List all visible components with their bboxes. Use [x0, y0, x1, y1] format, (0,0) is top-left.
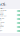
- staticText: Yesterday: [0, 15, 7, 17]
- button[interactable]: Internet: [0, 17, 20, 21]
- staticText: Electric: [0, 13, 4, 15]
- staticText: Mon: [0, 19, 2, 21]
- staticText: Fri: [0, 31, 1, 33]
- staticText: Activity: [0, 1, 6, 12]
- staticText: Paid: [17, 26, 20, 28]
- button[interactable]: Coffee: [0, 25, 20, 29]
- button[interactable]: Groceries: [0, 9, 20, 13]
- staticText: Transit: [0, 21, 4, 23]
- staticText: Today: [0, 11, 4, 13]
- staticText: Paid: [17, 14, 20, 16]
- staticText: Sun: [0, 23, 2, 25]
- staticText: Coffee: [0, 25, 4, 27]
- button[interactable]: Rent: [0, 29, 20, 33]
- button[interactable]: Transit: [0, 21, 20, 25]
- staticText: Paid: [17, 18, 20, 20]
- staticText: Sat: [0, 27, 1, 29]
- staticText: Paid: [17, 22, 20, 24]
- button[interactable]: Electric: [0, 13, 20, 17]
- staticText: Paid: [17, 30, 20, 32]
- staticText: Groceries: [0, 9, 7, 11]
- staticText: Rent: [0, 29, 2, 31]
- staticText: Paid: [17, 10, 20, 12]
- staticText: Internet: [0, 17, 4, 19]
